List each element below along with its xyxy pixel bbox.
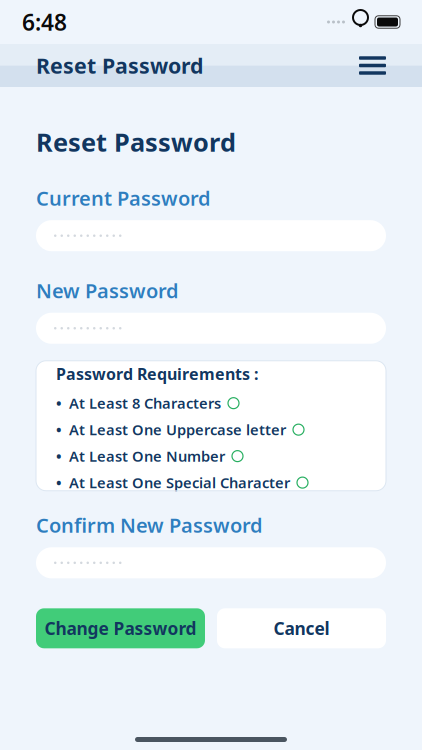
staticText: At Least One Uppercase letter xyxy=(69,420,286,439)
staticText: New Password xyxy=(36,277,179,304)
staticText: At Least One Special Character xyxy=(69,473,290,492)
staticText: At Least One Number xyxy=(69,446,225,466)
staticText: Change Password xyxy=(44,617,196,640)
staticText: • xyxy=(56,393,62,413)
staticText: • xyxy=(56,420,62,439)
staticText: At Least 8 Characters xyxy=(69,393,221,413)
staticText: • xyxy=(56,446,62,466)
staticText: 6:48 xyxy=(22,7,67,37)
staticText: Cancel xyxy=(273,617,329,640)
staticText: Password Requirements : xyxy=(56,363,258,384)
staticText: Confirm New Password xyxy=(36,512,263,538)
staticText: • xyxy=(56,473,62,492)
button[interactable]: Menu xyxy=(353,50,392,81)
button[interactable]: Change Password xyxy=(36,608,205,648)
staticText: Reset Password xyxy=(36,51,203,80)
staticText: Reset Password xyxy=(36,125,236,159)
button[interactable]: Cancel xyxy=(217,608,386,648)
staticText: Current Password xyxy=(36,185,211,211)
